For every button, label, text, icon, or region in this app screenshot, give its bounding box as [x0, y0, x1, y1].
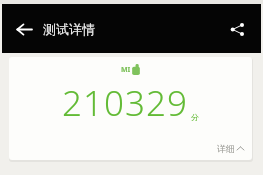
- staticText: 详细: [217, 143, 235, 154]
- button[interactable]: Back: [7, 12, 41, 46]
- button[interactable]: Share: [223, 15, 251, 43]
- staticText: 210329: [62, 79, 188, 127]
- staticText: MI: [121, 65, 131, 75]
- staticText: 分: [191, 112, 199, 122]
- button[interactable]: 详细: [214, 141, 247, 156]
- button[interactable]: MI: [9, 57, 252, 160]
- staticText: 测试详情: [43, 21, 95, 37]
